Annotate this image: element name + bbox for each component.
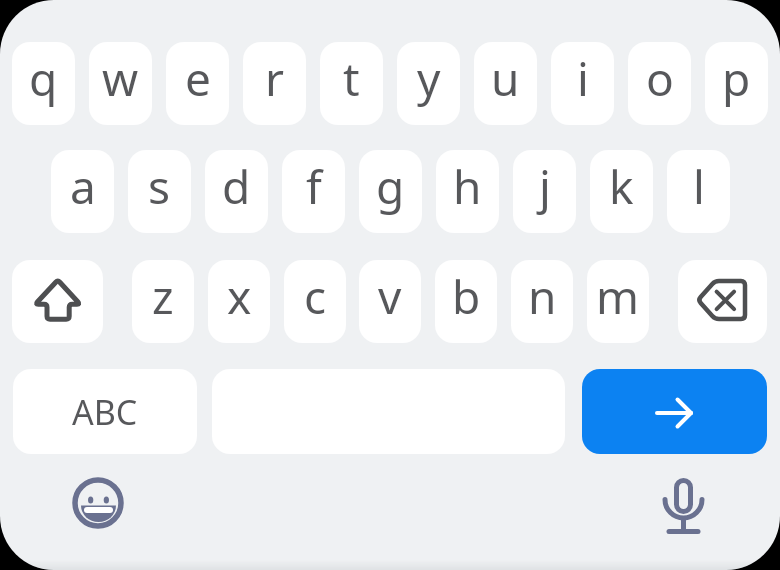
staticText: z <box>152 265 174 328</box>
staticText: b <box>452 265 481 328</box>
button[interactable]: r <box>243 42 306 125</box>
button[interactable]: d <box>205 150 268 233</box>
staticText: x <box>227 265 252 328</box>
button[interactable]: n <box>511 260 573 343</box>
staticText: i <box>577 47 589 110</box>
button[interactable]: i <box>551 42 614 125</box>
button[interactable]: l <box>667 150 730 233</box>
button[interactable]: m <box>587 260 649 343</box>
staticText: u <box>491 47 520 110</box>
staticText: c <box>304 265 327 328</box>
button[interactable]: x <box>208 260 270 343</box>
staticText: ABC <box>72 389 138 435</box>
button[interactable] <box>678 260 767 343</box>
button[interactable] <box>62 467 134 539</box>
staticText: g <box>376 155 405 218</box>
button[interactable]: f <box>282 150 345 233</box>
button[interactable]: u <box>474 42 537 125</box>
staticText: m <box>596 265 640 328</box>
staticText: f <box>306 155 322 218</box>
button[interactable]: a <box>51 150 114 233</box>
button[interactable]: o <box>628 42 691 125</box>
button[interactable]: z <box>132 260 194 343</box>
staticText: y <box>417 47 441 110</box>
staticText: j <box>539 155 551 218</box>
staticText: q <box>29 47 58 110</box>
staticText: k <box>609 155 634 218</box>
staticText: p <box>722 47 751 110</box>
button[interactable]: v <box>359 260 421 343</box>
staticText: l <box>693 155 705 218</box>
button[interactable] <box>12 260 103 343</box>
staticText: v <box>378 265 402 328</box>
button[interactable]: t <box>320 42 383 125</box>
button[interactable] <box>647 465 719 537</box>
staticText: w <box>102 47 139 110</box>
staticText: t <box>343 47 360 110</box>
staticText: a <box>70 155 96 218</box>
staticText: d <box>222 155 251 218</box>
button[interactable]: h <box>436 150 499 233</box>
button[interactable]: y <box>397 42 460 125</box>
button[interactable]: e <box>166 42 229 125</box>
button[interactable]: g <box>359 150 422 233</box>
button[interactable]: j <box>513 150 576 233</box>
button[interactable]: c <box>284 260 346 343</box>
button[interactable]: s <box>128 150 191 233</box>
staticText: s <box>148 155 171 218</box>
staticText: r <box>265 47 284 110</box>
button[interactable]: w <box>89 42 152 125</box>
button[interactable]: k <box>590 150 653 233</box>
staticText: n <box>528 265 557 328</box>
button[interactable]: b <box>435 260 497 343</box>
staticText: h <box>453 155 482 218</box>
button[interactable]: ABC <box>13 369 197 454</box>
staticText: e <box>185 47 211 110</box>
button[interactable] <box>582 369 767 454</box>
button[interactable]: q <box>12 42 75 125</box>
button[interactable]: p <box>705 42 768 125</box>
staticText: o <box>646 47 674 110</box>
